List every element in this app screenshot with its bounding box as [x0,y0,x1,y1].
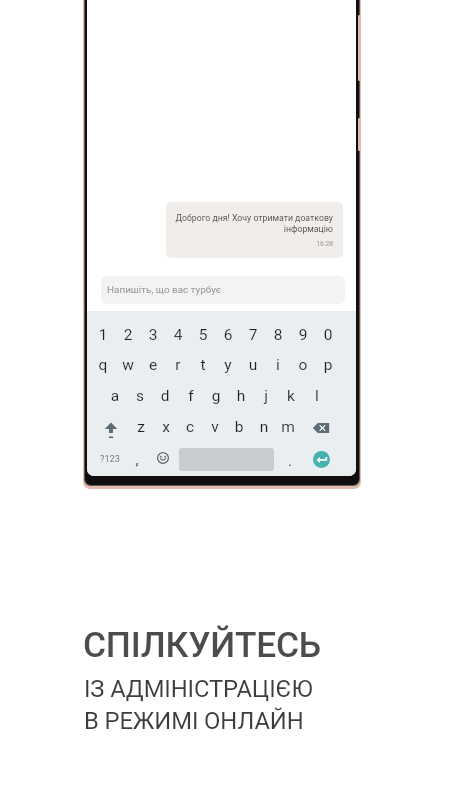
staticText: t [188,356,218,374]
button[interactable]: c [175,418,205,443]
button[interactable]: a [100,387,130,412]
staticText: y [213,356,243,374]
staticText: g [201,387,231,405]
staticText: l [302,387,332,405]
staticText: Напишіть, що вас турбує [107,284,222,296]
staticText: s [125,387,155,405]
button[interactable]: 4 [163,326,193,351]
button[interactable]: w [113,356,143,381]
button[interactable]: f [176,387,206,412]
staticText: a [100,387,130,405]
button[interactable]: 3 [138,326,168,351]
button[interactable]: . [275,452,305,476]
staticText: b [224,418,254,436]
button[interactable]: 0 [313,326,343,351]
staticText: . [275,452,305,470]
button[interactable]: l [302,387,332,412]
staticText: u [238,356,268,374]
button[interactable]: i [263,356,293,381]
button[interactable]: Emoji [155,450,171,466]
staticText: w [113,356,143,374]
staticText: h [226,387,256,405]
button[interactable]: t [188,356,218,381]
button[interactable]: n [249,418,279,443]
staticText: j [251,387,281,405]
button[interactable]: 5 [188,326,218,351]
button[interactable]: s [125,387,155,412]
button[interactable]: j [251,387,281,412]
button[interactable]: b [224,418,254,443]
button[interactable]: 2 [113,326,143,351]
staticText: ?123 [95,453,125,464]
staticText: v [200,418,230,436]
button[interactable]: Доброго дня! Хочу отримати доаткову [166,202,343,258]
staticText: 1 [88,326,118,344]
staticText: q [88,356,118,374]
staticText: r [163,356,193,374]
button[interactable]: Backspace [310,417,332,439]
button[interactable]: e [138,356,168,381]
staticText: 16:28 [166,240,333,248]
button[interactable]: z [126,418,156,443]
staticText: В РЕЖИМІ ОНЛАЙН [84,707,304,735]
button[interactable]: u [238,356,268,381]
staticText: n [249,418,279,436]
button[interactable]: d [150,387,180,412]
staticText: 2 [113,326,143,344]
button[interactable]: Send [313,451,330,468]
button[interactable]: g [201,387,231,412]
staticText: c [175,418,205,436]
button[interactable]: ?123 [95,453,125,468]
staticText: o [288,356,318,374]
button[interactable]: h [226,387,256,412]
button[interactable]: 1 [88,326,118,351]
button[interactable]: Shift [100,419,122,441]
staticText: ІЗ АДМІНІСТРАЦІЄЮ [84,675,313,703]
staticText: m [273,418,303,436]
staticText: d [150,387,180,405]
button[interactable]: y [213,356,243,381]
staticText: z [126,418,156,436]
button[interactable]: q [88,356,118,381]
button[interactable]: m [273,418,303,443]
staticText: 3 [138,326,168,344]
staticText: 5 [188,326,218,344]
staticText: p [313,356,343,374]
button[interactable]: k [276,387,306,412]
button[interactable]: 9 [288,326,318,351]
staticText: i [263,356,293,374]
staticText: x [151,418,181,436]
staticText: , [122,451,152,469]
button[interactable]: 7 [238,326,268,351]
staticText: СПІЛКУЙТЕСЬ [83,624,321,665]
button[interactable]: Напишіть, що вас турбує [101,276,345,304]
button[interactable]: , [122,451,152,476]
button[interactable]: 6 [213,326,243,351]
staticText: k [276,387,306,405]
staticText: 6 [213,326,243,344]
staticText: 7 [238,326,268,344]
staticText: 0 [313,326,343,344]
button[interactable]: o [288,356,318,381]
staticText: 8 [263,326,293,344]
staticText: 9 [288,326,318,344]
staticText: f [176,387,206,405]
staticText: Доброго дня! Хочу отримати доаткову [166,213,333,223]
button[interactable]: v [200,418,230,443]
button[interactable]: 8 [263,326,293,351]
staticText: 4 [163,326,193,344]
button[interactable]: r [163,356,193,381]
staticText: інформацію [166,224,333,234]
button[interactable]: x [151,418,181,443]
button[interactable]: p [313,356,343,381]
staticText: e [138,356,168,374]
